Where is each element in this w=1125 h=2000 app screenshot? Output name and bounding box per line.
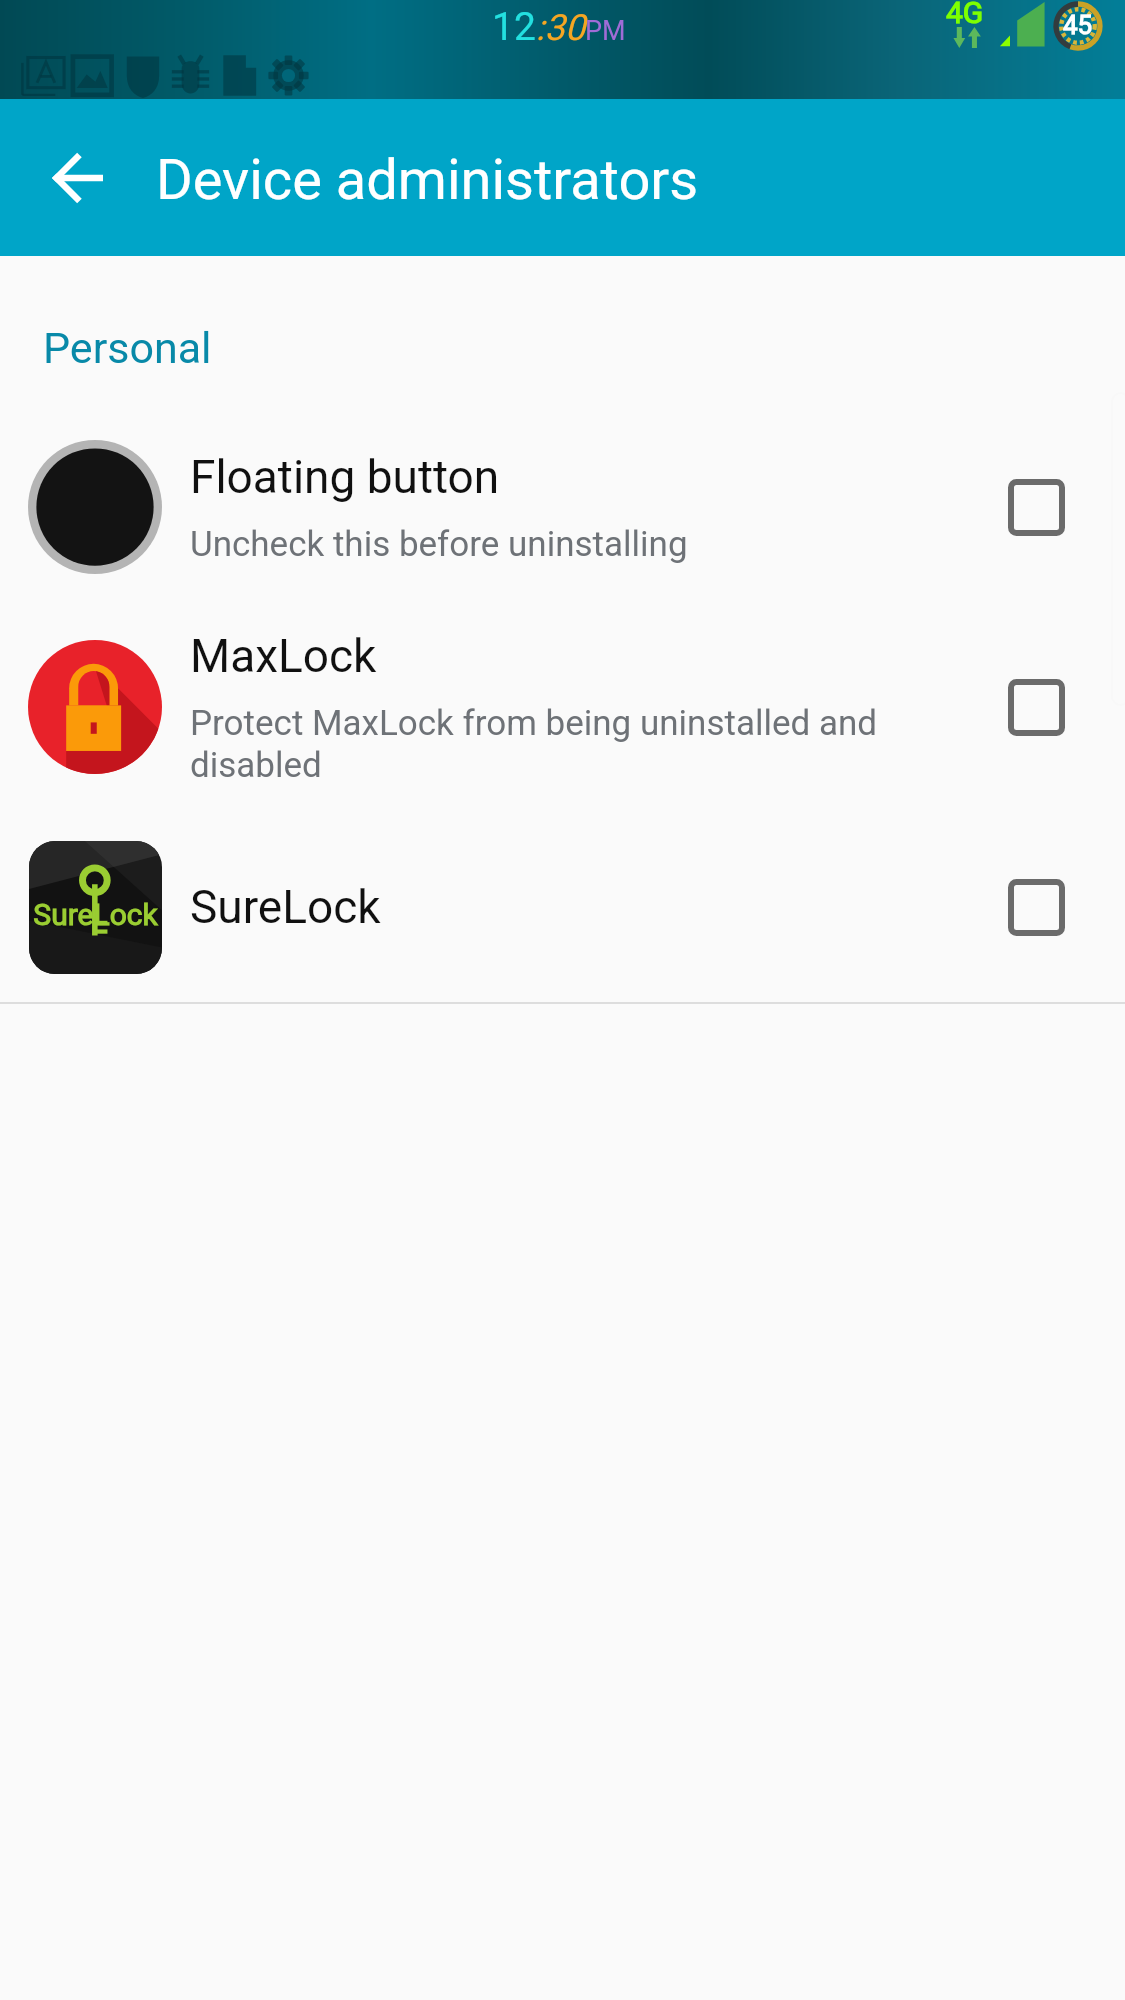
staticText: Personal [43,323,212,373]
staticText: Uncheck this before uninstalling [190,524,688,565]
staticText: Floating button [190,450,500,504]
staticText: Device administrators [156,147,699,213]
staticText: 12:30PM [492,4,626,50]
button[interactable]: MaxLock [0,607,1125,807]
staticText: Protect MaxLock from being uninstalled a… [190,703,899,786]
staticText: SureLock [190,880,381,934]
staticText: 4G [946,0,984,30]
button[interactable]: Activate Floating button [947,407,1125,607]
button[interactable]: Navigate up [34,133,124,223]
staticText: SureLock [33,897,158,932]
button[interactable]: Activate SureLock [947,807,1125,1007]
staticText: MaxLock [190,629,377,683]
button[interactable]: SureLock [0,807,1125,1007]
button[interactable]: Floating button [0,407,1125,607]
staticText: 45 [1063,10,1093,40]
button[interactable]: Activate MaxLock [947,607,1125,807]
